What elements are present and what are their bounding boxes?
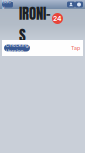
button[interactable]: Tap xyxy=(70,44,81,51)
button[interactable]: Checking Version xyxy=(4,44,30,51)
staticText: Checking Version xyxy=(5,41,28,54)
staticText: 24 xyxy=(53,14,62,23)
button[interactable]: Back xyxy=(2,1,13,7)
button[interactable]: Location xyxy=(75,1,83,7)
staticText: Tap xyxy=(71,45,80,51)
staticText: IRONIS xyxy=(19,2,51,47)
button[interactable]: Account xyxy=(67,1,75,7)
staticText: Back xyxy=(2,0,13,11)
